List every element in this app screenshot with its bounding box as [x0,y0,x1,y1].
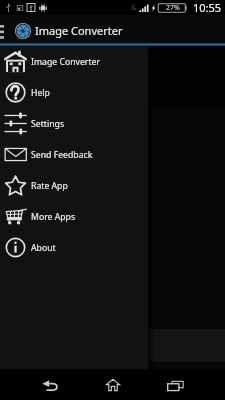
staticText: More Apps [31,211,76,223]
staticText: Help [31,87,50,99]
staticText: Image Converter [35,23,123,38]
staticText: Image Converter [31,56,101,68]
button[interactable]: Help [0,77,148,108]
button[interactable]: About [0,232,148,263]
staticText: Settings [31,118,65,130]
staticText: 10:55 [193,0,222,15]
button[interactable]: Recent apps [144,369,206,400]
button[interactable]: Image Converter [0,46,148,77]
button[interactable]: Open navigation drawer [0,18,10,43]
staticText: Send Feedback [31,149,93,161]
staticText: 27% [166,3,180,13]
staticText: Rate App [31,180,68,192]
button[interactable]: Rate App [0,170,148,201]
button[interactable]: Back [19,369,81,400]
button[interactable]: More Apps [0,201,148,232]
button[interactable]: Home [82,369,144,400]
staticText: About [31,242,56,254]
button[interactable]: Send Feedback [0,139,148,170]
button[interactable]: Settings [0,108,148,139]
